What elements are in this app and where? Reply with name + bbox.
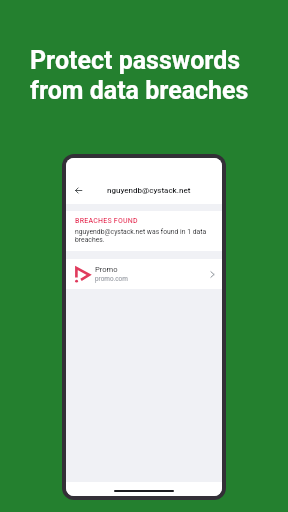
button[interactable]: Back: [67, 179, 89, 201]
staticText: promo.com: [95, 275, 128, 283]
staticText: BREACHES FOUND: [75, 217, 138, 225]
staticText: Promo: [95, 265, 118, 274]
button[interactable]: Promo: [66, 259, 222, 289]
staticText: Protect passwords from data breaches: [30, 46, 249, 105]
staticText: nguyendb@cystack.net was found in 1 data…: [75, 228, 214, 244]
staticText: nguyendb@cystack.net: [107, 186, 191, 195]
